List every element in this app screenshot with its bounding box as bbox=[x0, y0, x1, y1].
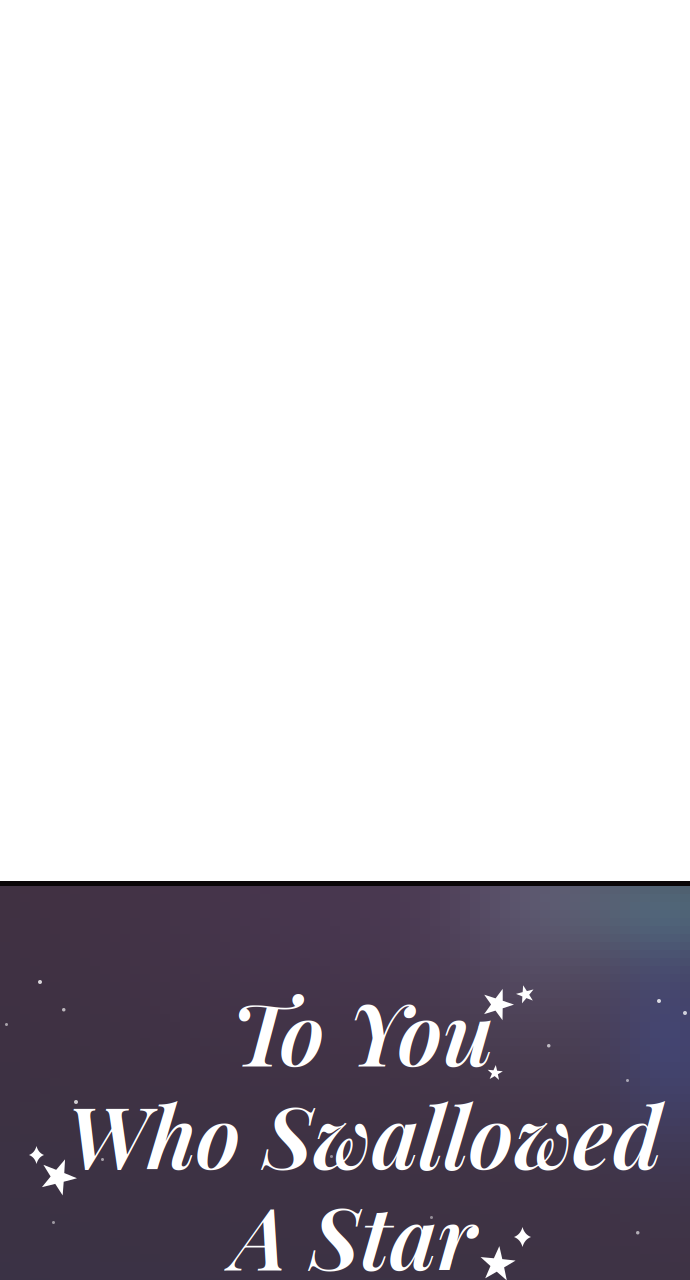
staticText: A Star bbox=[232, 1177, 476, 1280]
staticText: To You bbox=[231, 973, 494, 1088]
staticText: Who Swallowed bbox=[66, 1076, 662, 1191]
